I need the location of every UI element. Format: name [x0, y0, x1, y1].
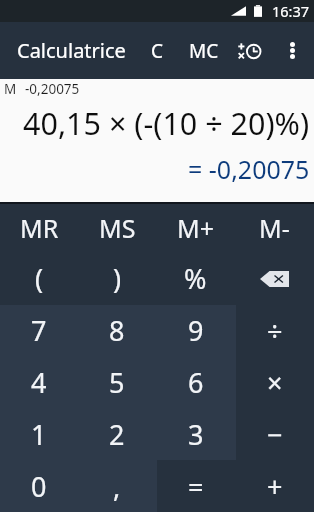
button[interactable]: ×: [235, 356, 314, 408]
staticText: ): [113, 260, 122, 297]
button[interactable]: C: [138, 22, 176, 79]
button[interactable]: Calculation history: [227, 22, 271, 79]
button[interactable]: +: [235, 460, 314, 512]
staticText: M: [4, 80, 17, 98]
staticText: 1: [31, 416, 47, 453]
button[interactable]: ): [78, 253, 156, 304]
staticText: 2: [109, 416, 125, 453]
button[interactable]: 5: [78, 356, 156, 408]
staticText: C: [151, 38, 164, 64]
staticText: 0: [31, 468, 47, 505]
staticText: (: [35, 260, 44, 297]
staticText: ÷: [267, 312, 283, 349]
button[interactable]: M-: [235, 202, 314, 253]
staticText: -0,20075: [25, 80, 80, 98]
staticText: ×: [267, 364, 283, 401]
button[interactable]: M+: [156, 202, 235, 253]
staticText: %: [184, 260, 207, 297]
button[interactable]: MS: [78, 202, 156, 253]
button[interactable]: 4: [0, 356, 78, 408]
staticText: 40,15 × (-(10 ÷ 20)%): [23, 102, 310, 144]
button[interactable]: MC: [181, 22, 227, 79]
button[interactable]: %: [156, 253, 235, 304]
staticText: 9: [188, 312, 204, 349]
staticText: ,: [113, 468, 121, 505]
button[interactable]: 2: [78, 408, 156, 460]
staticText: MR: [20, 211, 59, 245]
button[interactable]: Backspace: [235, 253, 314, 304]
button[interactable]: 1: [0, 408, 78, 460]
button[interactable]: 6: [156, 356, 235, 408]
staticText: M+: [177, 211, 214, 245]
button[interactable]: ÷: [235, 304, 314, 356]
other: Backspace: [260, 271, 289, 287]
button[interactable]: 3: [156, 408, 235, 460]
staticText: −: [267, 416, 283, 453]
staticText: 6: [188, 364, 204, 401]
staticText: MC: [189, 38, 219, 64]
button[interactable]: =: [156, 460, 235, 512]
staticText: Calculatrice: [17, 37, 126, 64]
staticText: M-: [259, 211, 290, 245]
button[interactable]: −: [235, 408, 314, 460]
staticText: =: [188, 468, 204, 505]
button[interactable]: ,: [78, 460, 156, 512]
button[interactable]: More options: [272, 22, 312, 79]
staticText: MS: [99, 211, 136, 245]
staticText: 5: [109, 364, 125, 401]
button[interactable]: 7: [0, 304, 78, 356]
button[interactable]: 0: [0, 460, 78, 512]
staticText: 4: [31, 364, 47, 401]
button[interactable]: Calculatrice: [0, 22, 140, 79]
staticText: +: [267, 468, 283, 505]
button[interactable]: 8: [78, 304, 156, 356]
staticText: 8: [109, 312, 125, 349]
staticText: 7: [31, 312, 47, 349]
staticText: 16:37: [272, 1, 310, 21]
button[interactable]: 9: [156, 304, 235, 356]
button[interactable]: MR: [0, 202, 78, 253]
button[interactable]: (: [0, 253, 78, 304]
staticText: 3: [188, 416, 204, 453]
staticText: = -0,20075: [188, 152, 310, 186]
